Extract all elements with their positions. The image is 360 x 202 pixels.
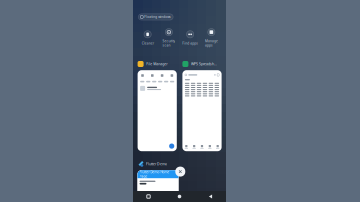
button[interactable]: Close — [175, 167, 185, 177]
staticText: Manage apps — [205, 39, 218, 47]
staticText: Cleaner — [142, 41, 154, 45]
staticText: WPS Spreadsh... — [191, 62, 217, 66]
button[interactable]: Cleaner — [137, 31, 158, 45]
button[interactable]: Back — [195, 191, 226, 202]
staticText: Find apps — [182, 41, 198, 45]
button[interactable]: File Manager — [138, 61, 177, 151]
button[interactable]: Recents — [133, 191, 164, 202]
staticText: Security scan — [162, 39, 175, 47]
button[interactable]: WPS Spreadsh... — [182, 61, 222, 151]
button[interactable]: Floating windows — [138, 14, 173, 20]
button[interactable]: Security scan — [158, 28, 179, 47]
button[interactable]: Flutter Demo — [137, 161, 178, 200]
button[interactable]: Find apps — [179, 31, 201, 45]
staticText: Flutter Demo — [146, 162, 167, 166]
staticText: Floating windows — [144, 15, 170, 19]
button[interactable]: Manage apps — [201, 28, 222, 47]
staticText: File Manager — [146, 62, 167, 66]
button[interactable]: Home — [164, 191, 195, 202]
staticText: Flutter Demo Home Page — [139, 170, 169, 178]
